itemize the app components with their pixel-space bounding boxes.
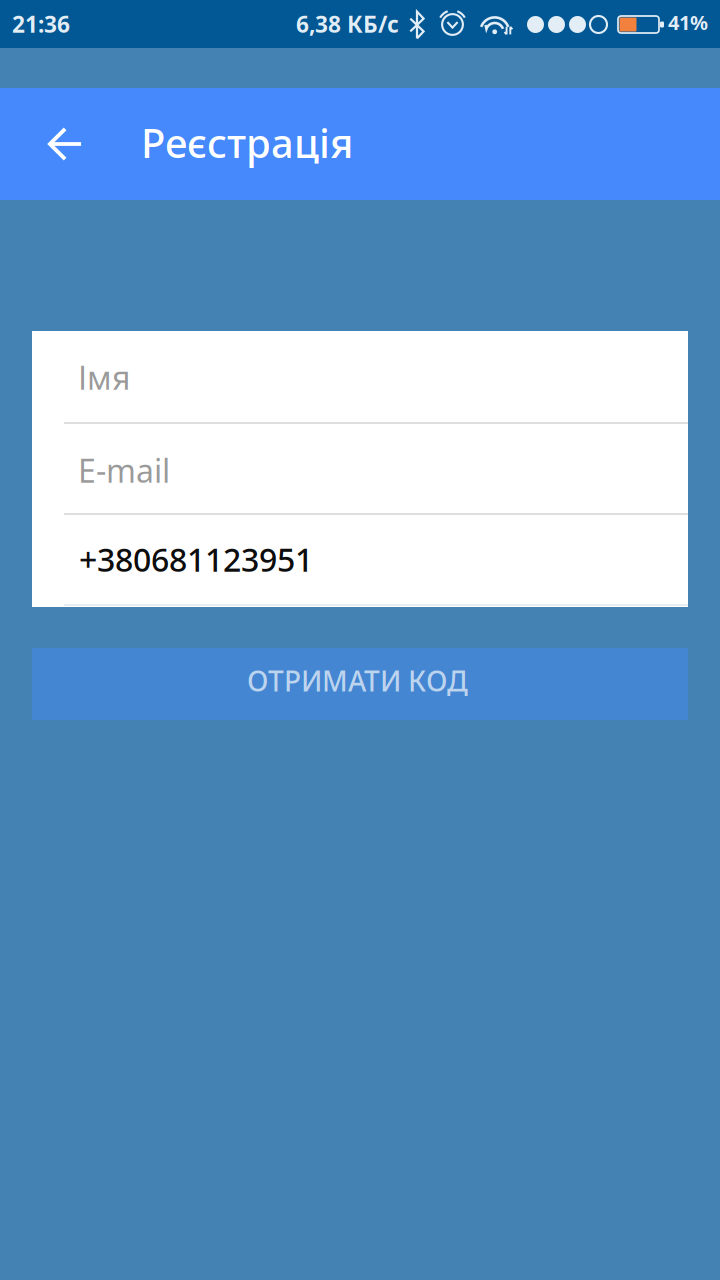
- staticText: +380681123951: [79, 538, 313, 580]
- staticText: Імя: [78, 356, 130, 398]
- button[interactable]: Back: [0, 88, 129, 200]
- staticText: ОТРИМАТИ КОД: [247, 662, 468, 699]
- button[interactable]: ОТРИМАТИ КОД: [32, 648, 688, 720]
- staticText: Реєстрація: [141, 116, 353, 169]
- staticText: 6,38 КБ/c: [296, 9, 399, 39]
- staticText: E-mail: [78, 449, 170, 491]
- staticText: 41%: [668, 9, 708, 36]
- staticText: 21:36: [12, 9, 70, 39]
